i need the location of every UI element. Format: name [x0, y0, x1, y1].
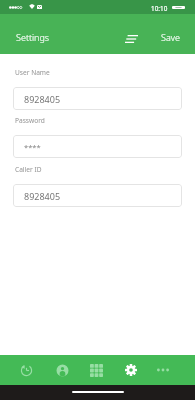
staticText: User Name	[15, 68, 50, 77]
button[interactable]: Keypad	[79, 355, 113, 385]
staticText: Caller ID	[15, 165, 42, 174]
button[interactable]: Sort	[118, 26, 144, 52]
staticText: Save	[161, 31, 180, 43]
staticText: Password	[15, 116, 45, 125]
button[interactable]: 8928405	[13, 87, 182, 110]
button[interactable]: Settings	[10, 27, 56, 47]
staticText: 8928405	[24, 190, 61, 202]
button[interactable]: More	[146, 355, 180, 385]
button[interactable]: ****	[13, 135, 182, 158]
staticText: 8928405	[24, 93, 61, 105]
staticText: 10:10	[151, 4, 168, 13]
staticText: Settings	[16, 31, 50, 43]
button[interactable]: 8928405	[13, 184, 182, 207]
button[interactable]: Settings	[114, 355, 148, 385]
staticText: ****	[24, 142, 41, 152]
button[interactable]: Save	[155, 27, 186, 47]
button[interactable]: Recents	[9, 355, 43, 385]
button[interactable]: Contacts	[45, 355, 79, 385]
